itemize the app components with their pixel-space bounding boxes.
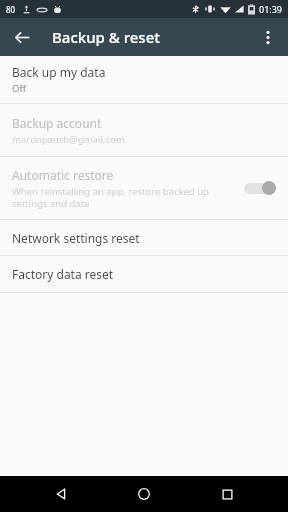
staticText: martinpaush@gmail.com <box>12 133 125 146</box>
staticText: Backup & reset <box>52 27 161 47</box>
staticText: 80 <box>6 4 16 15</box>
button[interactable]: Recent apps <box>205 476 249 512</box>
staticText: 01:39 <box>259 3 283 15</box>
button[interactable]: Factory data reset <box>0 256 288 292</box>
staticText: Off <box>12 82 26 95</box>
button[interactable]: Network settings reset <box>0 220 288 255</box>
button[interactable]: Home <box>122 476 166 512</box>
staticText: Network settings reset <box>12 230 140 246</box>
staticText: Factory data reset <box>12 266 114 282</box>
staticText: Backup account <box>12 115 102 131</box>
button[interactable]: Back <box>39 476 83 512</box>
staticText: Automatic restore <box>12 167 114 183</box>
button[interactable]: Back up my data <box>0 56 288 103</box>
button[interactable]: Backup account <box>0 104 288 156</box>
staticText: When reinstalling an app, restore backed… <box>12 185 234 210</box>
staticText: Back up my data <box>12 64 106 80</box>
button[interactable]: Automatic restore <box>0 157 288 219</box>
button[interactable]: More options <box>252 21 284 53</box>
button[interactable]: Back <box>6 21 38 53</box>
